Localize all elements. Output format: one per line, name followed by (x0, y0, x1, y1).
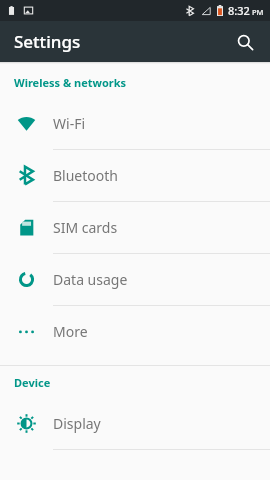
button[interactable]: More (0, 306, 270, 357)
button[interactable]: Wi-Fi (0, 98, 270, 149)
button[interactable]: Bluetooth (0, 150, 270, 201)
staticText: Wireless & networks (14, 75, 127, 90)
staticText: Wi-Fi (53, 114, 86, 133)
button[interactable]: Display (0, 398, 270, 449)
staticText: Data usage (53, 270, 128, 289)
staticText: Display (53, 414, 101, 433)
staticText: Device (14, 375, 51, 390)
staticText: Settings (14, 30, 81, 53)
button[interactable]: Search (228, 25, 262, 59)
button[interactable]: Data usage (0, 254, 270, 305)
staticText: More (53, 322, 88, 341)
staticText: 8:32 (228, 3, 250, 18)
button[interactable]: SIM cards (0, 202, 270, 253)
staticText: SIM cards (53, 218, 118, 237)
staticText: PM (252, 7, 264, 17)
staticText: Bluetooth (53, 166, 118, 185)
